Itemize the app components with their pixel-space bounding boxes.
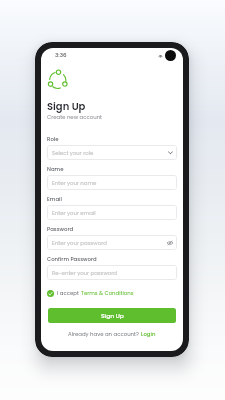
staticText: Enter your name <box>52 179 173 187</box>
staticText: Re-enter your password <box>52 269 173 277</box>
staticText: Enter your email <box>52 209 173 217</box>
button[interactable]: Enter your password <box>47 235 177 250</box>
staticText: Password <box>47 225 74 233</box>
button[interactable]: Login <box>141 330 156 338</box>
button[interactable]: Sign Up <box>48 308 176 323</box>
staticText: Confirm Password <box>47 255 97 263</box>
staticText: Already have an account? <box>68 330 141 338</box>
staticText: 3:36 <box>55 51 67 59</box>
staticText: Name <box>47 165 64 173</box>
button[interactable]: Enter your name <box>47 175 177 190</box>
button[interactable]: I accept <box>47 289 134 297</box>
staticText: Sign Up <box>101 312 124 320</box>
staticText: Email <box>47 195 62 203</box>
staticText: I accept <box>57 289 81 297</box>
staticText: Select your role <box>52 149 168 157</box>
staticText: Terms & Conditions <box>81 289 134 297</box>
staticText: Sign Up <box>47 99 86 113</box>
staticText: Enter your password <box>52 239 167 247</box>
button[interactable]: Re-enter your password <box>47 265 177 280</box>
button[interactable]: Select your role <box>47 145 177 160</box>
staticText: Create new account <box>47 113 103 121</box>
staticText: Login <box>141 330 156 338</box>
button[interactable]: Enter your email <box>47 205 177 220</box>
staticText: Role <box>47 135 59 143</box>
